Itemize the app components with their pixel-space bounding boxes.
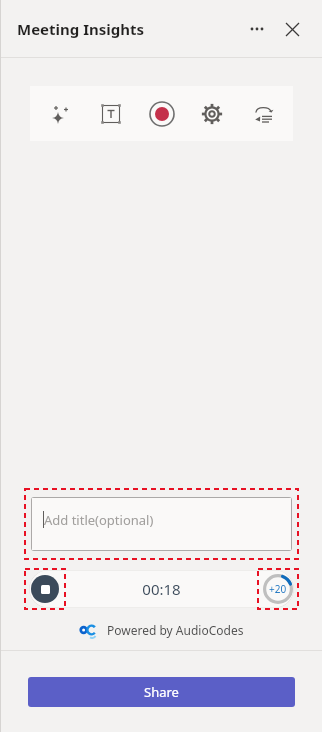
staticText: Add title(optional) [44, 511, 154, 529]
staticText: Share [144, 683, 179, 701]
button[interactable]: Close [278, 15, 306, 43]
staticText: Meeting Insights [17, 19, 145, 39]
button[interactable]: Add title(optional) [31, 497, 292, 551]
button[interactable]: More options [244, 16, 270, 42]
button[interactable]: Add 20 minutes [257, 568, 299, 610]
button[interactable]: Insights [41, 94, 81, 134]
button[interactable]: Stop recording [24, 568, 66, 610]
button[interactable]: Settings [192, 94, 232, 134]
button[interactable]: Record [142, 94, 182, 134]
staticText: +20 [269, 582, 287, 596]
button[interactable]: Share [28, 677, 295, 707]
staticText: 00:18 [142, 579, 181, 599]
button[interactable]: Summary [243, 94, 283, 134]
staticText: Powered by AudioCodes [107, 622, 244, 638]
button[interactable]: Text [91, 94, 131, 134]
